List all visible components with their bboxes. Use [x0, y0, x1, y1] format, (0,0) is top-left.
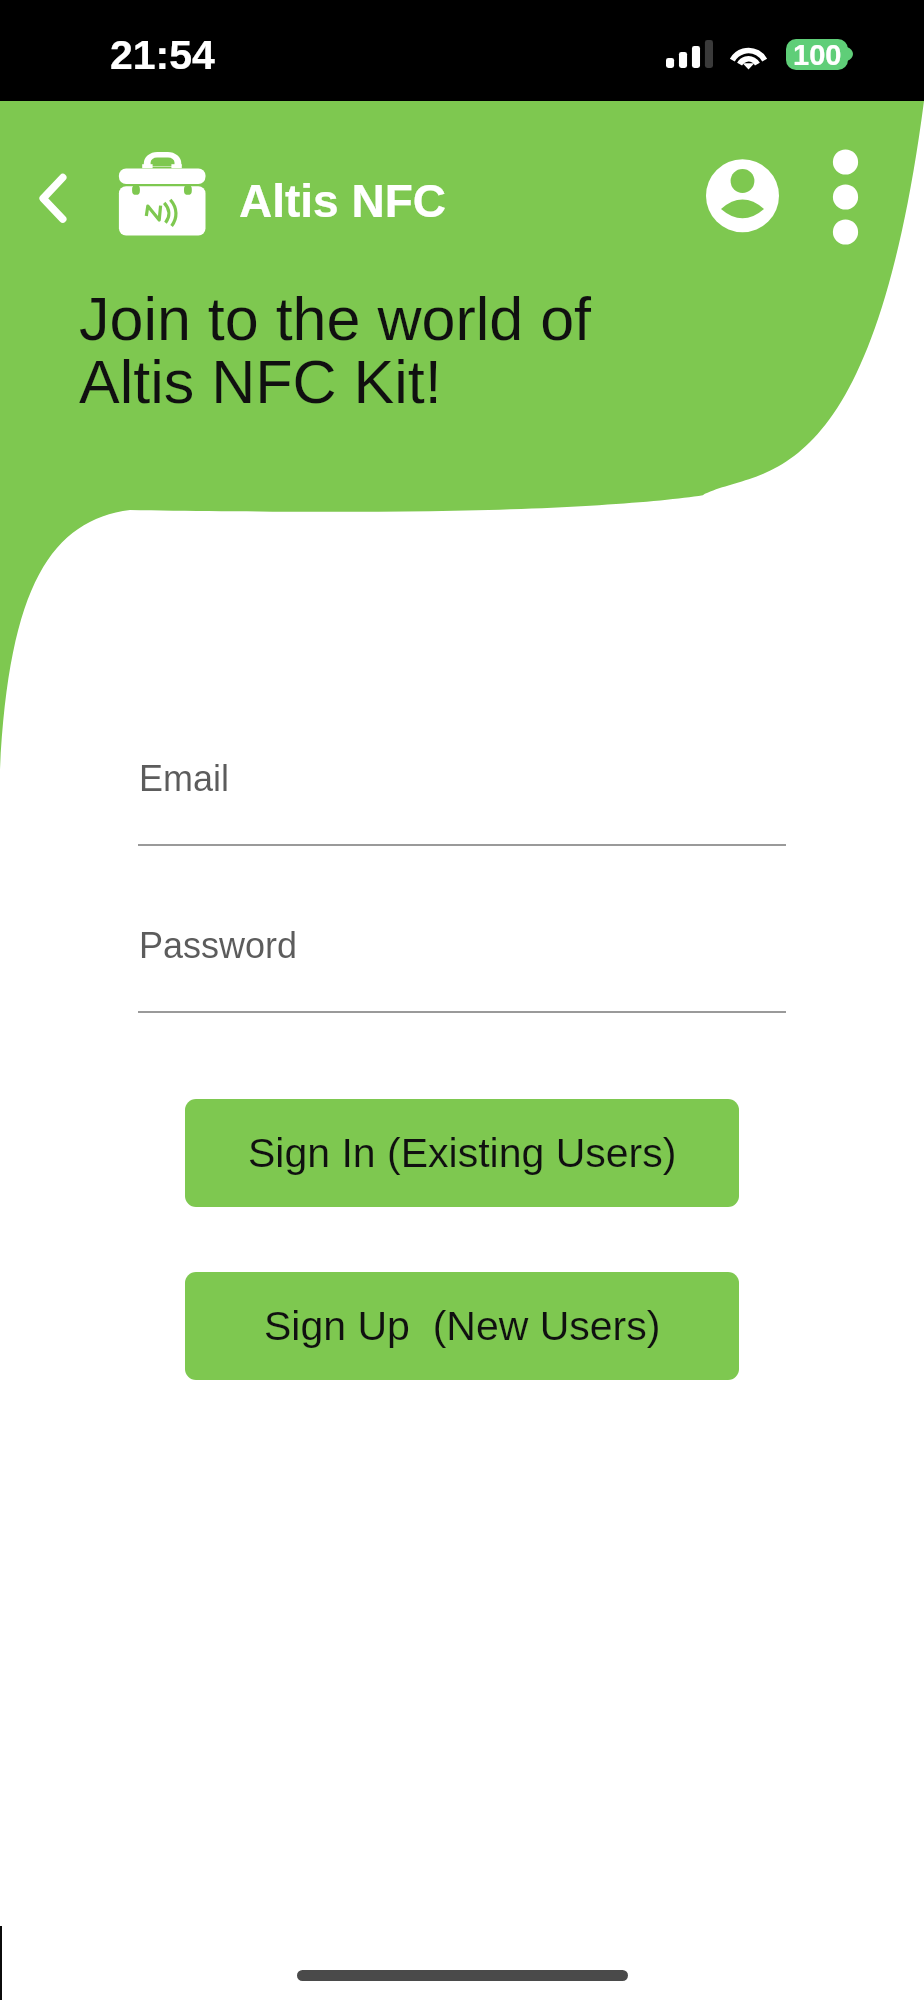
- staticText: Sign In (Existing Users): [248, 1130, 677, 1176]
- button[interactable]: More options: [815, 140, 877, 254]
- staticText: Sign Up (New Users): [264, 1303, 661, 1349]
- button[interactable]: Sign Up (New Users): [185, 1272, 739, 1380]
- button[interactable]: Back: [20, 160, 92, 238]
- staticText: Password: [139, 925, 298, 965]
- button[interactable]: Account: [694, 147, 791, 244]
- staticText: Email: [139, 758, 230, 798]
- button[interactable]: Sign In (Existing Users): [185, 1099, 739, 1207]
- staticText: 21:54: [110, 32, 215, 78]
- staticText: 100: [793, 39, 842, 70]
- staticText: Altis NFC: [239, 175, 446, 226]
- staticText: Join to the world of Altis NFC Kit!: [79, 285, 592, 416]
